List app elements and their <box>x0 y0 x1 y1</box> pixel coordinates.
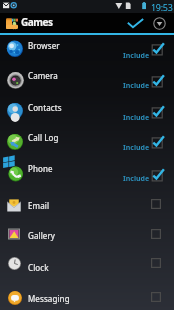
button[interactable]: Browser <box>0 35 174 57</box>
staticText: Call Log <box>28 132 59 143</box>
button[interactable]: Done <box>120 13 150 33</box>
button[interactable]: Clock <box>0 248 174 280</box>
staticText: Include <box>123 51 150 61</box>
button[interactable]: Camera <box>0 57 174 88</box>
button[interactable]: Gallery <box>0 217 174 248</box>
staticText: 19:53 <box>151 1 173 13</box>
staticText: Include <box>123 174 150 184</box>
staticText: Include <box>123 113 150 123</box>
staticText: Include <box>123 143 150 153</box>
button[interactable]: Email <box>0 184 174 218</box>
button[interactable]: Contacts <box>0 88 174 119</box>
staticText: Include <box>123 81 150 91</box>
staticText: Clock <box>28 262 49 273</box>
staticText: Camera <box>28 70 58 81</box>
button[interactable]: Messaging <box>0 280 174 310</box>
staticText: Phone <box>28 163 53 174</box>
button[interactable]: Phone <box>0 150 174 184</box>
staticText: Messaging <box>28 293 70 304</box>
staticText: Games <box>21 15 53 29</box>
button[interactable]: More options <box>149 13 169 33</box>
staticText: Gallery <box>28 230 56 241</box>
staticText: Browser <box>28 40 60 51</box>
staticText: Email <box>28 200 50 211</box>
staticText: Contacts <box>28 102 62 113</box>
button[interactable]: Call Log <box>0 119 174 150</box>
button[interactable]: Games <box>0 13 53 33</box>
